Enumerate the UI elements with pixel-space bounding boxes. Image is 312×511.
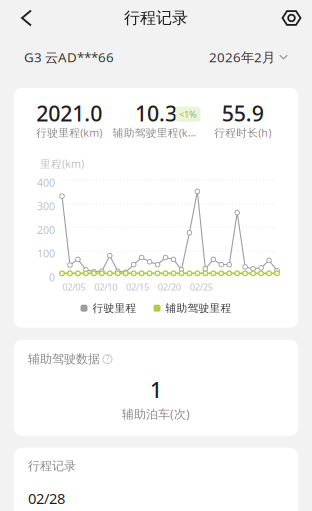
staticText: 02/10 bbox=[94, 281, 117, 293]
staticText: 02/20 bbox=[158, 281, 181, 293]
staticText: 200 bbox=[37, 223, 55, 237]
staticText: 辅助驾驶里程(km) bbox=[113, 125, 199, 140]
staticText: 02/28 bbox=[28, 488, 65, 508]
staticText: 行程记录 bbox=[28, 459, 76, 473]
staticText: ? bbox=[106, 354, 109, 364]
staticText: 辅助驾驶里程 bbox=[165, 302, 231, 315]
staticText: 辅助泊车(次) bbox=[122, 406, 190, 422]
staticText: 1 bbox=[150, 375, 162, 404]
staticText: G3 云AD***66 bbox=[24, 48, 114, 66]
button[interactable]: 设置 bbox=[275, 0, 308, 36]
staticText: 02/15 bbox=[126, 281, 149, 293]
staticText: 55.9 bbox=[222, 99, 264, 127]
staticText: 辅助驾驶数据 bbox=[28, 352, 100, 366]
staticText: 02/25 bbox=[190, 281, 213, 293]
staticText: 2021.0 bbox=[36, 99, 102, 127]
staticText: <1% bbox=[179, 108, 197, 120]
staticText: 行驶里程(km) bbox=[36, 125, 102, 140]
staticText: 行程时长(h) bbox=[214, 125, 271, 140]
staticText: 400 bbox=[37, 175, 55, 190]
staticText: 行驶里程 bbox=[92, 302, 136, 315]
staticText: 300 bbox=[37, 199, 55, 213]
staticText: 02/05 bbox=[62, 281, 85, 293]
staticText: 里程(km) bbox=[40, 157, 84, 171]
staticText: 10.3 bbox=[135, 99, 177, 127]
staticText: 行程记录 bbox=[124, 8, 188, 28]
button[interactable]: 返回 bbox=[4, 0, 49, 36]
staticText: 0 bbox=[49, 270, 55, 284]
button[interactable]: 2026年2月 bbox=[209, 48, 288, 66]
staticText: 2026年2月 bbox=[209, 48, 275, 66]
staticText: 100 bbox=[37, 246, 55, 260]
